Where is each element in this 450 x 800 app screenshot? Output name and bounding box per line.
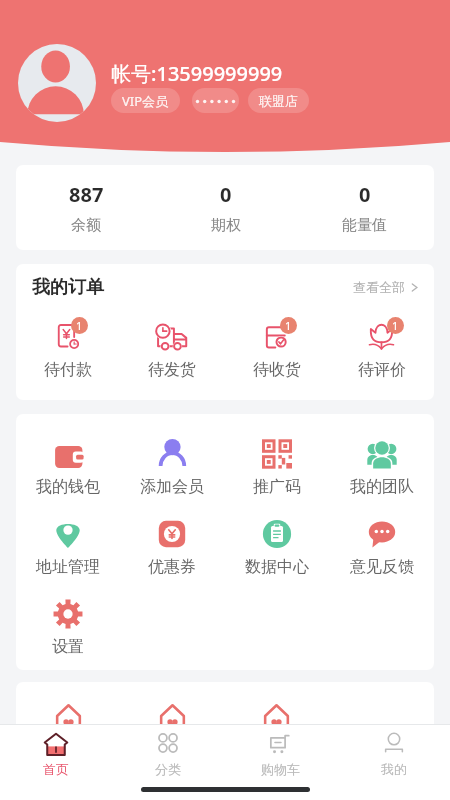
staticText: 0: [220, 181, 232, 208]
staticText: 1: [392, 318, 399, 333]
staticText: 期权: [211, 216, 241, 235]
button[interactable]: 待发货: [120, 317, 224, 380]
button[interactable]: 查看全部: [353, 279, 420, 295]
button[interactable]: 推广码: [224, 439, 329, 497]
button[interactable]: Avatar: [18, 44, 96, 122]
staticText: 0: [359, 181, 371, 208]
staticText: 余额: [71, 216, 101, 235]
staticText: 1: [285, 318, 292, 333]
staticText: 能量值: [342, 216, 387, 235]
button[interactable]: 意见反馈: [329, 519, 434, 577]
button[interactable]: 1: [16, 317, 120, 380]
staticText: 查看全部: [353, 279, 405, 295]
staticText: 意见反馈: [350, 557, 414, 577]
button[interactable]: 首页: [0, 725, 112, 777]
button[interactable]: 联盟店: [248, 88, 309, 113]
staticText: 购物车: [261, 761, 300, 777]
staticText: 分类: [155, 761, 181, 777]
staticText: 887: [69, 181, 104, 208]
button[interactable]: Hidden info: [192, 88, 239, 113]
button[interactable]: 1: [224, 317, 329, 380]
staticText: 推广码: [253, 477, 301, 497]
button[interactable]: 887: [16, 165, 156, 250]
staticText: 待收货: [253, 360, 301, 380]
button[interactable]: 设置: [16, 599, 120, 657]
staticText: 待发货: [148, 360, 196, 380]
button[interactable]: 0: [156, 165, 295, 250]
staticText: 添加会员: [140, 477, 204, 497]
button[interactable]: 优惠券: [120, 519, 224, 577]
staticText: 首页: [43, 761, 69, 777]
button[interactable]: VIP会员: [111, 88, 180, 113]
staticText: 待付款: [44, 360, 92, 380]
staticText: 设置: [52, 637, 84, 657]
button[interactable]: 分类: [112, 725, 224, 777]
button[interactable]: 数据中心: [224, 519, 329, 577]
button[interactable]: 我的团队: [329, 439, 434, 497]
button[interactable]: 我的: [337, 725, 450, 777]
button[interactable]: 0: [295, 165, 434, 250]
button[interactable]: 地址管理: [16, 519, 120, 577]
staticText: VIP会员: [122, 92, 169, 110]
staticText: 我的团队: [350, 477, 414, 497]
button[interactable]: 我的钱包: [16, 439, 120, 497]
button[interactable]: 添加会员: [120, 439, 224, 497]
staticText: 1: [76, 318, 83, 333]
staticText: 我的订单: [32, 276, 104, 299]
staticText: 数据中心: [245, 557, 309, 577]
staticText: 优惠券: [148, 557, 196, 577]
staticText: 我的钱包: [36, 477, 100, 497]
button[interactable]: 购物车: [224, 725, 337, 777]
button[interactable]: 1: [329, 317, 434, 380]
staticText: 待评价: [358, 360, 406, 380]
staticText: 联盟店: [259, 93, 298, 109]
staticText: 帐号:13599999999: [111, 60, 283, 87]
staticText: 我的: [381, 761, 407, 777]
staticText: 地址管理: [36, 557, 100, 577]
